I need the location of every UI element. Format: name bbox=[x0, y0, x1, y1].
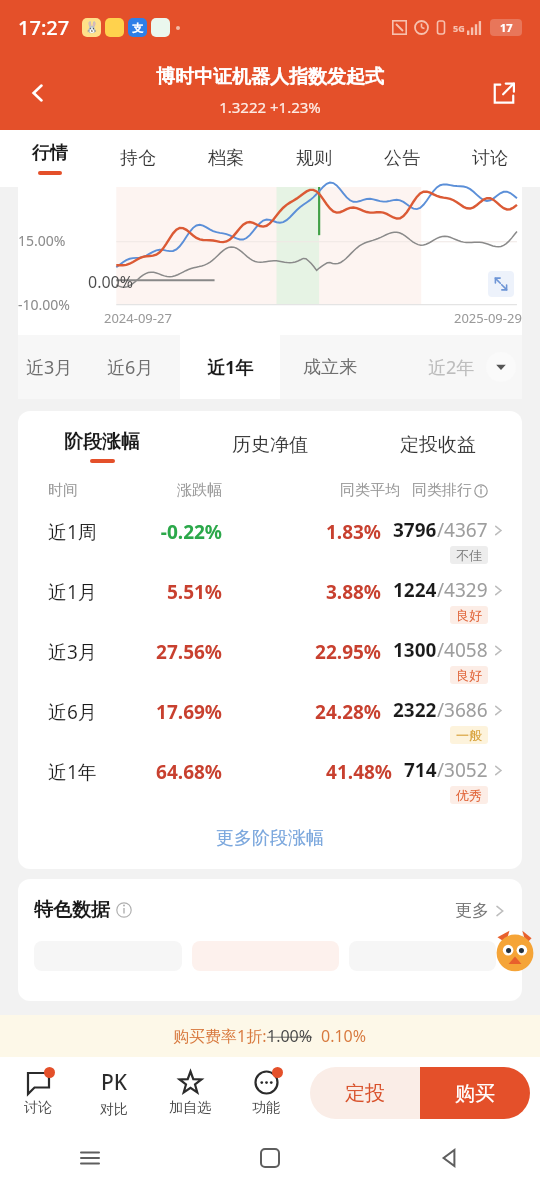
staticText: 近6月 bbox=[48, 699, 120, 725]
staticText: 不佳 bbox=[456, 547, 482, 563]
button[interactable]: 近1月 bbox=[18, 567, 522, 627]
staticText: 功能 bbox=[252, 1099, 280, 1117]
button[interactable]: 近3月 bbox=[18, 335, 80, 399]
staticText: 27.56% bbox=[120, 639, 222, 665]
button[interactable]: Back bbox=[18, 73, 58, 113]
staticText: 时间 bbox=[48, 481, 120, 500]
button[interactable]: 近2年 bbox=[380, 335, 522, 399]
button[interactable]: 历史净值 bbox=[186, 411, 354, 473]
staticText: 一般 bbox=[456, 727, 482, 743]
staticText: 17 bbox=[500, 20, 513, 35]
staticText: 良好 bbox=[456, 607, 482, 623]
button[interactable]: 功能 bbox=[228, 1057, 304, 1129]
staticText: 持仓 bbox=[120, 147, 156, 170]
button[interactable]: 更多阶段涨幅 bbox=[18, 807, 522, 869]
staticText: -0.22% bbox=[120, 519, 222, 545]
staticText: 5G bbox=[453, 22, 465, 34]
button[interactable]: Menu bbox=[0, 1129, 180, 1187]
button[interactable]: 更多 bbox=[455, 900, 506, 921]
staticText: 64.68% bbox=[120, 759, 222, 785]
staticText: 2025-09-29 bbox=[454, 309, 522, 327]
button[interactable]: 定投收益 bbox=[354, 411, 522, 473]
staticText: 档案 bbox=[208, 147, 244, 170]
staticText: 近1月 bbox=[48, 579, 120, 605]
staticText: 近2年 bbox=[428, 355, 475, 380]
staticText: 讨论 bbox=[24, 1099, 52, 1117]
button[interactable]: 公告 bbox=[358, 130, 446, 187]
staticText: 近6月 bbox=[107, 355, 154, 380]
staticText: 同类平均 bbox=[222, 481, 400, 500]
button[interactable]: Share bbox=[484, 73, 524, 113]
staticText: 24.28% bbox=[222, 699, 381, 725]
staticText: 5.51% bbox=[120, 579, 222, 605]
staticText: /4367 bbox=[437, 517, 488, 543]
staticText: 17:27 bbox=[18, 14, 70, 41]
button[interactable]: 行情 bbox=[6, 130, 94, 187]
staticText: 定投 bbox=[345, 1081, 385, 1106]
button[interactable]: 讨论 bbox=[446, 130, 534, 187]
button[interactable]: PK bbox=[76, 1057, 152, 1129]
button[interactable]: 阶段涨幅 bbox=[18, 411, 186, 473]
staticText: 0.00% bbox=[88, 271, 134, 293]
staticText: 🐰 bbox=[85, 21, 99, 34]
staticText: 1300 bbox=[393, 637, 437, 663]
staticText: 3796 bbox=[393, 517, 437, 543]
staticText: 1.00% bbox=[267, 1025, 313, 1047]
staticText: 0.10% bbox=[321, 1025, 367, 1047]
button[interactable]: 近6月 bbox=[80, 335, 180, 399]
button[interactable]: Home bbox=[180, 1129, 360, 1187]
button[interactable]: 近6月 bbox=[18, 687, 522, 747]
staticText: 涨跌幅 bbox=[120, 481, 222, 500]
staticText: 阶段涨幅 bbox=[64, 430, 140, 454]
staticText: 良好 bbox=[456, 667, 482, 683]
button[interactable]: 规则 bbox=[270, 130, 358, 187]
staticText: 近1年 bbox=[207, 355, 254, 380]
button[interactable]: 近1年 bbox=[180, 335, 280, 399]
staticText: 定投收益 bbox=[400, 433, 476, 457]
staticText: /3052 bbox=[437, 757, 488, 783]
staticText: 3.88% bbox=[222, 579, 381, 605]
staticText: 近3月 bbox=[26, 355, 73, 380]
staticText: /4329 bbox=[437, 577, 488, 603]
staticText: 购买费率1折: bbox=[173, 1025, 267, 1047]
staticText: 支 bbox=[132, 21, 143, 35]
staticText: 1224 bbox=[393, 577, 437, 603]
staticText: 近3月 bbox=[48, 639, 120, 665]
button[interactable]: 购买 bbox=[420, 1067, 530, 1119]
staticText: PK bbox=[101, 1068, 128, 1097]
button[interactable]: 档案 bbox=[182, 130, 270, 187]
button[interactable]: Fullscreen bbox=[488, 271, 514, 297]
button[interactable]: Assistant bbox=[492, 929, 538, 975]
button[interactable]: 近3月 bbox=[18, 627, 522, 687]
staticText: 更多阶段涨幅 bbox=[216, 827, 324, 850]
staticText: 对比 bbox=[100, 1101, 128, 1119]
staticText: -10.00% bbox=[18, 295, 70, 314]
staticText: 讨论 bbox=[472, 147, 508, 170]
staticText: 22.95% bbox=[222, 639, 381, 665]
staticText: 加自选 bbox=[169, 1099, 211, 1117]
button[interactable]: Back bbox=[360, 1129, 540, 1187]
staticText: 优秀 bbox=[456, 787, 482, 803]
staticText: 2322 bbox=[393, 697, 437, 723]
staticText: 博时中证机器人指数发起式 bbox=[156, 65, 384, 89]
button[interactable]: 加自选 bbox=[152, 1057, 228, 1129]
button[interactable]: 成立来 bbox=[280, 335, 380, 399]
button[interactable]: 近1年 bbox=[18, 747, 522, 807]
staticText: 历史净值 bbox=[232, 433, 308, 457]
button[interactable]: More periods bbox=[486, 352, 516, 382]
staticText: 17.69% bbox=[120, 699, 222, 725]
button[interactable]: 定投 bbox=[310, 1067, 420, 1119]
button[interactable]: 近1周 bbox=[18, 507, 522, 567]
button[interactable]: 购买费率1折: bbox=[0, 1015, 540, 1057]
staticText: 近1年 bbox=[48, 759, 120, 785]
staticText: 特色数据 bbox=[34, 898, 110, 922]
staticText: 同类排行 bbox=[412, 481, 472, 500]
staticText: 2024-09-27 bbox=[104, 309, 172, 327]
staticText: 1.3222 +1.23% bbox=[219, 97, 321, 117]
staticText: 1.83% bbox=[222, 519, 381, 545]
button[interactable]: 讨论 bbox=[0, 1057, 76, 1129]
button[interactable]: 持仓 bbox=[94, 130, 182, 187]
